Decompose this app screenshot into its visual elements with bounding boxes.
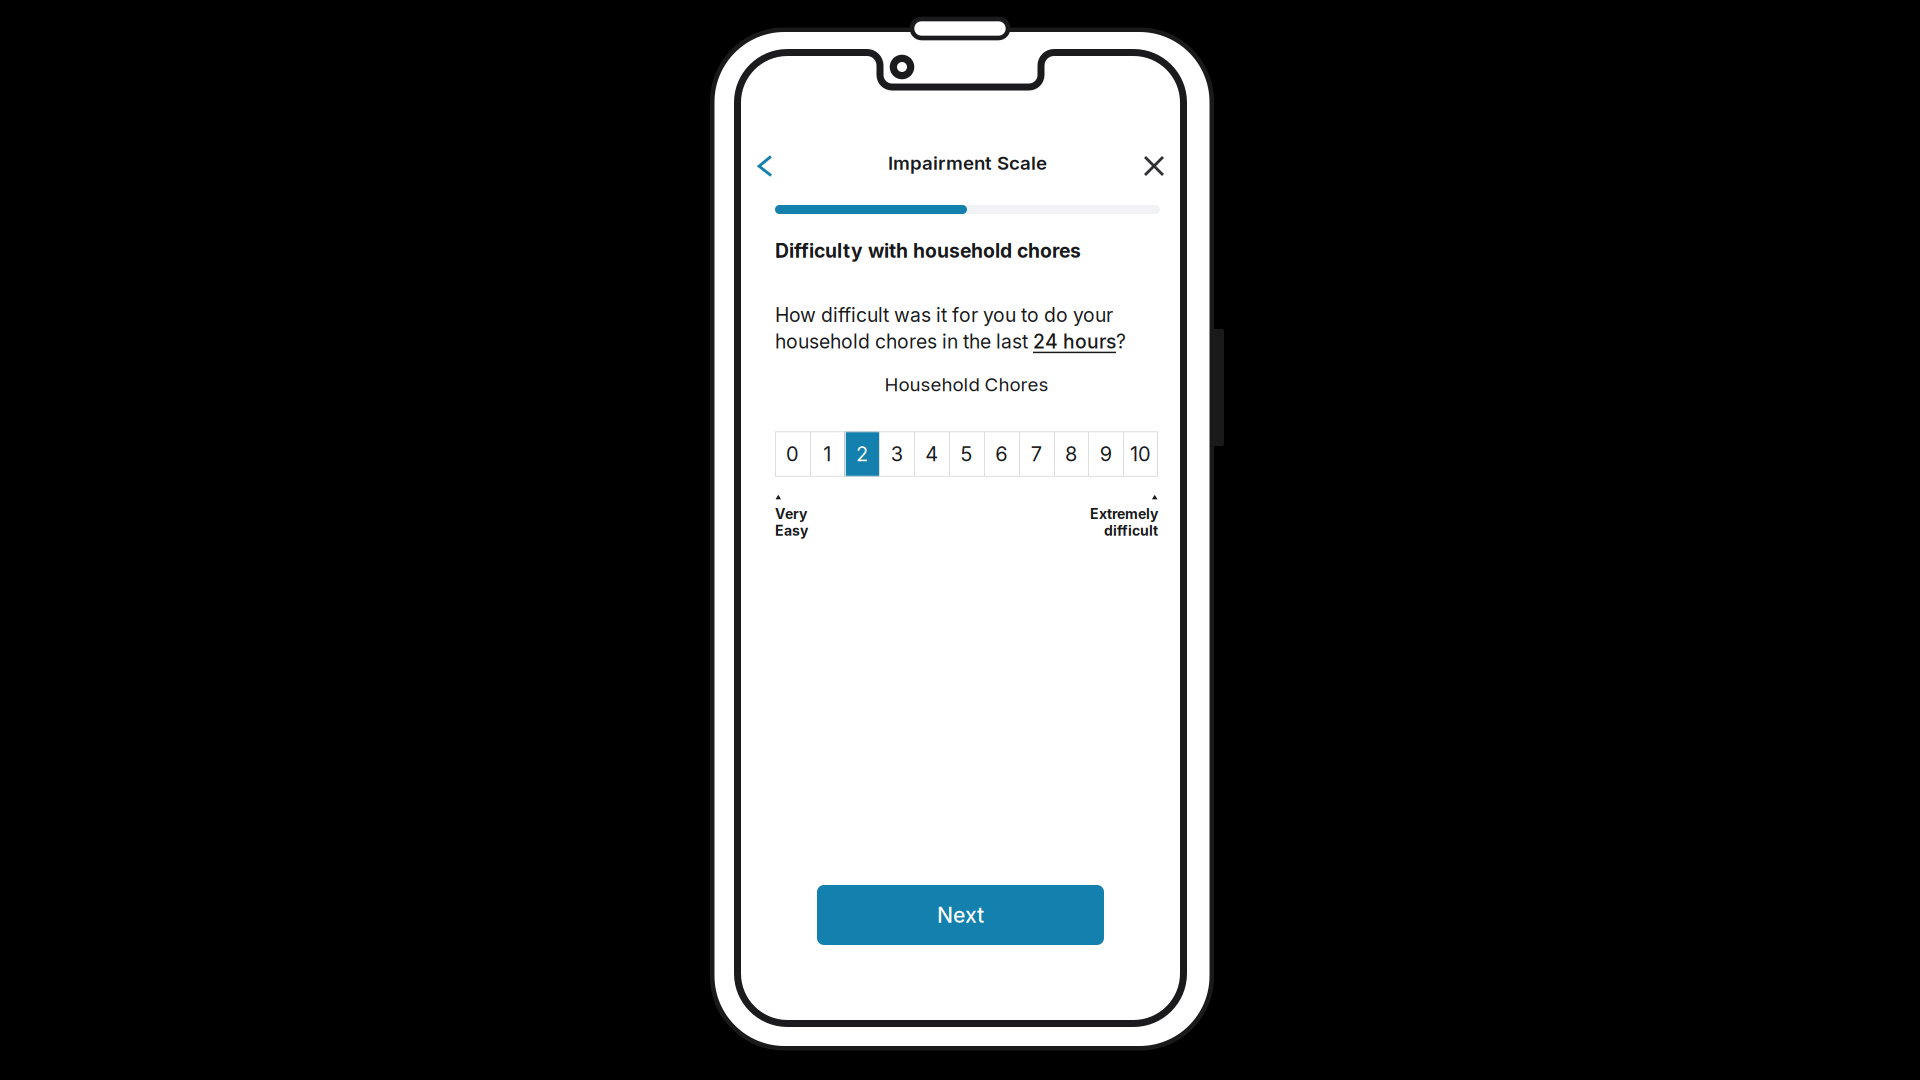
staticText: Next	[937, 902, 984, 928]
button[interactable]: 3	[879, 431, 914, 477]
staticText: difficult	[1104, 522, 1158, 539]
button[interactable]: 6	[984, 431, 1019, 477]
staticText: 8	[1065, 442, 1077, 466]
staticText: 10	[1130, 442, 1151, 466]
staticText: 5	[960, 442, 972, 466]
staticText: Household Chores	[884, 373, 1048, 396]
staticText: Difficulty with household chores	[775, 239, 1081, 262]
staticText: Very	[775, 505, 807, 522]
button[interactable]: 8	[1054, 431, 1088, 477]
staticText: Extremely	[1090, 505, 1158, 522]
staticText: Impairment Scale	[888, 152, 1047, 174]
staticText: 0	[786, 442, 799, 466]
button[interactable]: 9	[1088, 431, 1123, 477]
button[interactable]: 10	[1123, 431, 1158, 477]
button[interactable]: 5	[949, 431, 984, 477]
button[interactable]: 0	[775, 431, 810, 477]
staticText: 7	[1031, 442, 1042, 466]
button[interactable]: Back	[743, 144, 787, 188]
button[interactable]: 2	[845, 431, 879, 477]
staticText: 2	[856, 442, 868, 466]
staticText: 4	[925, 442, 938, 466]
staticText: 6	[995, 442, 1007, 466]
staticText: 3	[891, 442, 903, 466]
staticText: Easy	[775, 522, 808, 539]
staticText: 1	[823, 442, 831, 466]
staticText: 9	[1100, 442, 1112, 466]
button[interactable]: Close	[1132, 144, 1176, 188]
staticText: How difficult was it for you to do your …	[775, 303, 1126, 353]
button[interactable]: 1	[810, 431, 845, 477]
button[interactable]: 7	[1019, 431, 1053, 477]
button[interactable]: Next	[817, 885, 1104, 945]
button[interactable]: 4	[914, 431, 949, 477]
